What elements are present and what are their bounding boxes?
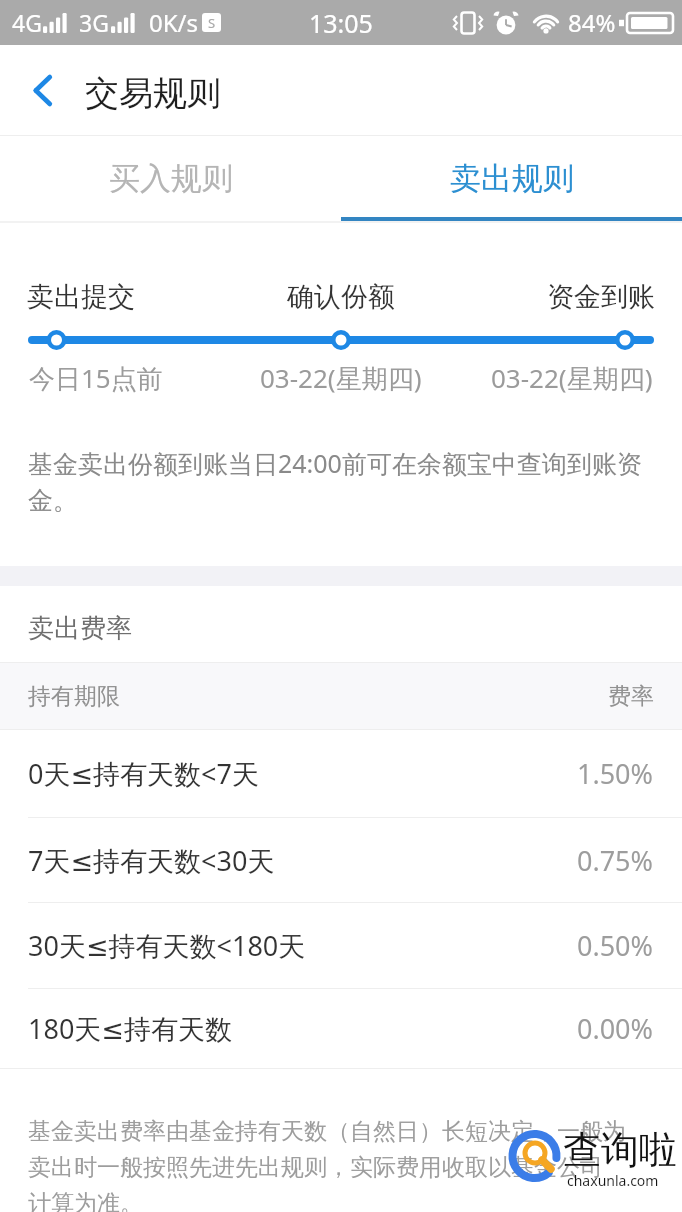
staticText: chaxunla.com (567, 1171, 659, 1190)
button[interactable]: 7天≤持有天数<30天 (0, 818, 682, 902)
staticText: 03-22(星期四) (491, 360, 653, 396)
button[interactable]: 30天≤持有天数<180天 (0, 903, 682, 988)
staticText: 确认份额 (287, 280, 395, 314)
staticText: S (208, 14, 216, 32)
staticText: 今日15点前 (29, 360, 163, 396)
button[interactable]: 卖出规则 (341, 136, 682, 221)
staticText: 基金卖出费率由基金持有天数（自然日）长短决定，一般为 卖出时一般按照先进先出规则… (28, 1117, 626, 1212)
staticText: 7天≤持有天数<30天 (28, 842, 275, 879)
staticText: 30天≤持有天数<180天 (28, 927, 306, 964)
staticText: 0.50% (577, 927, 654, 964)
staticText: 180天≤持有天数 (28, 1010, 232, 1047)
button[interactable]: 买入规则 (0, 136, 341, 221)
staticText: 持有期限 (28, 682, 120, 711)
staticText: 3G (79, 7, 109, 38)
staticText: 买入规则 (109, 159, 233, 198)
staticText: 4G (12, 7, 42, 38)
staticText: 费率 (608, 682, 654, 711)
staticText: 基金卖出份额到账当日24:00前可在余额宝中查询到账资 金。 (28, 446, 642, 516)
staticText: 卖出费率 (28, 612, 132, 645)
staticText: 0.75% (577, 842, 654, 879)
staticText: 03-22(星期四) (260, 360, 422, 396)
staticText: 13:05 (309, 6, 373, 40)
button[interactable]: 180天≤持有天数 (0, 989, 682, 1068)
staticText: 1.50% (577, 755, 654, 792)
staticText: 资金到账 (547, 280, 655, 314)
staticText: 查询啦 (563, 1126, 677, 1174)
staticText: 0K/s (149, 6, 199, 39)
staticText: 卖出规则 (450, 159, 574, 198)
staticText: 卖出提交 (27, 280, 135, 314)
staticText: 交易规则 (85, 72, 221, 115)
button[interactable]: Back (0, 45, 85, 136)
staticText: 84% (568, 6, 616, 39)
button[interactable]: 0天≤持有天数<7天 (0, 730, 682, 817)
staticText: 0.00% (577, 1010, 654, 1047)
staticText: 0天≤持有天数<7天 (28, 755, 259, 792)
